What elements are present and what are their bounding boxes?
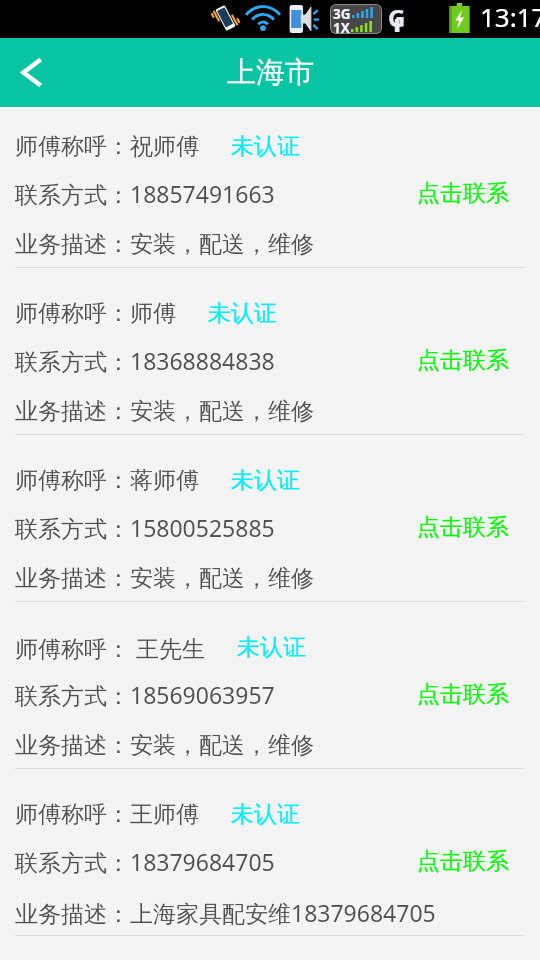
staticText: 师傅称呼：祝师傅 (15, 132, 199, 161)
button[interactable]: 点击联系 (417, 179, 525, 208)
staticText: 联系方式：18368884838 (15, 345, 275, 376)
staticText: 师傅称呼：蒋师傅 (15, 466, 199, 495)
staticText: 未认证 (237, 633, 306, 662)
staticText: 联系方式：18379684705 (15, 846, 275, 877)
staticText: 未认证 (231, 466, 300, 495)
staticText: 业务描述：安装，配送，维修 (15, 230, 314, 259)
staticText: 联系方式：18569063957 (15, 679, 275, 710)
staticText: 上海市 (227, 54, 314, 91)
button[interactable]: 师傅称呼：蒋师傅 (0, 435, 540, 602)
staticText: 13:17 (480, 0, 540, 34)
staticText: 师傅称呼：师傅 (15, 299, 176, 328)
button[interactable]: 点击联系 (417, 513, 525, 542)
staticText: 业务描述：安装，配送，维修 (15, 397, 314, 426)
staticText: 业务描述：安装，配送，维修 (15, 564, 314, 593)
staticText: 联系方式：18857491663 (15, 178, 275, 209)
staticText: 联系方式：15800525885 (15, 512, 275, 543)
staticText: 未认证 (231, 800, 300, 829)
button[interactable]: 师傅称呼： 王先生 (0, 602, 540, 769)
staticText: 业务描述：安装，配送，维修 (15, 731, 314, 760)
button[interactable]: 师傅称呼：师傅 (0, 268, 540, 435)
button[interactable]: 点击联系 (417, 680, 525, 709)
staticText: G (388, 1, 404, 27)
staticText: 未认证 (231, 132, 300, 161)
button[interactable]: Back (0, 38, 63, 107)
button[interactable]: 师傅称呼：祝师傅 (0, 109, 540, 268)
staticText: 1X (333, 19, 350, 33)
staticText: 师傅称呼： 王先生 (15, 632, 205, 663)
button[interactable]: 点击联系 (417, 346, 525, 375)
button[interactable]: 点击联系 (417, 847, 525, 876)
staticText: 未认证 (208, 299, 277, 328)
staticText: 师傅称呼：王师傅 (15, 800, 199, 829)
staticText: 3G (333, 5, 351, 19)
staticText: 业务描述：上海家具配安维18379684705 (15, 897, 436, 928)
button[interactable]: 师傅称呼：王师傅 (0, 769, 540, 936)
